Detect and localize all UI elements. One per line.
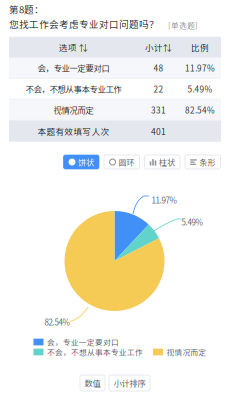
staticText: 小计⇅ [145, 41, 172, 53]
staticText: 选项 ⇅ [59, 41, 88, 53]
staticText: 第8题： [9, 2, 44, 16]
staticText: 会，专业一定要对口 [37, 62, 109, 74]
button[interactable]: 小计排序 [109, 375, 150, 391]
staticText: 22 [153, 83, 163, 95]
staticText: 您找工作会考虑专业对口问题吗？ [9, 17, 159, 31]
staticText: 饼状 [78, 156, 94, 168]
staticText: 48 [153, 62, 163, 74]
button[interactable]: 饼状 [63, 155, 99, 169]
staticText: 82.54% [44, 316, 69, 328]
button[interactable]: 会，专业一定要对口 [33, 337, 119, 346]
button[interactable]: 不会，不想从事本专业工作 [33, 347, 143, 356]
staticText: 331 [151, 104, 166, 116]
staticText: 视情况而定 [53, 104, 93, 116]
staticText: 会，专业一定要对口 [47, 336, 119, 347]
button[interactable]: 条形 [185, 155, 220, 169]
button[interactable]: 柱状 [144, 155, 180, 169]
staticText: 条形 [199, 156, 215, 168]
staticText: 不会，不想从事本专业工作 [47, 346, 143, 357]
button[interactable]: 视情况而定 [153, 347, 206, 356]
staticText: 82.54% [185, 104, 215, 116]
staticText: 柱状 [159, 156, 175, 168]
staticText: 小计排序 [113, 377, 145, 389]
staticText: [单选题] [168, 20, 198, 31]
staticText: 视情况而定 [166, 346, 206, 357]
staticText: 本题有效填写人次 [37, 125, 109, 137]
staticText: 11.97% [151, 194, 176, 206]
staticText: 数值 [84, 377, 100, 389]
staticText: 5.49% [181, 216, 202, 228]
button[interactable]: 圆环 [104, 155, 139, 169]
staticText: 比例 [191, 41, 209, 53]
button[interactable]: 数值 [80, 375, 105, 391]
staticText: 11.97% [185, 62, 215, 74]
staticText: 不会，不想从事本专业工作 [25, 83, 121, 95]
staticText: 401 [151, 125, 166, 137]
staticText: 圆环 [118, 156, 134, 168]
staticText: 5.49% [187, 83, 212, 95]
